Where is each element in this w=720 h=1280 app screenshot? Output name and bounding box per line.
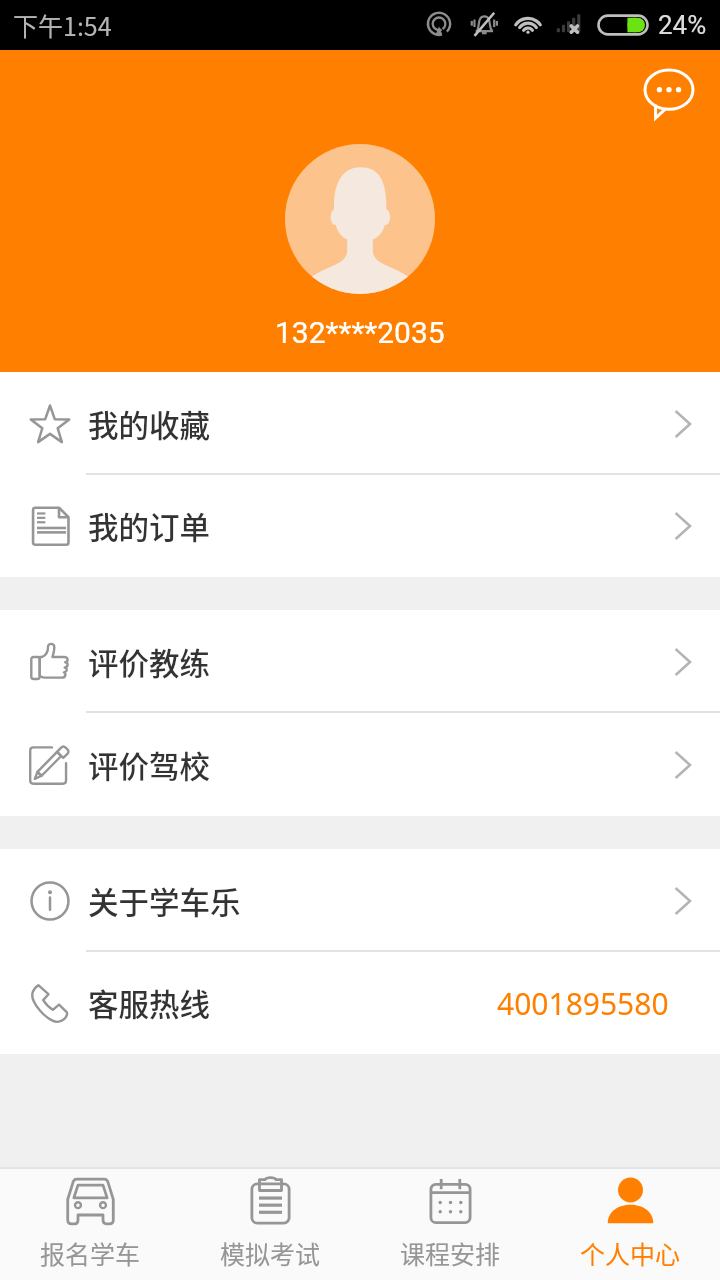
staticText: 4001895580 — [497, 983, 669, 1024]
button[interactable]: 评价驾校 — [0, 713, 720, 816]
button[interactable]: Messages — [637, 62, 701, 126]
staticText: 关于学车乐 — [88, 879, 241, 923]
button[interactable]: 报名学车 — [0, 1167, 180, 1280]
button[interactable]: 我的收藏 — [0, 372, 720, 475]
button[interactable]: 关于学车乐 — [0, 849, 720, 952]
staticText: 我的订单 — [88, 504, 210, 548]
staticText: 下午1:54 — [13, 7, 112, 43]
button[interactable]: 客服热线 — [0, 952, 720, 1054]
staticText: 客服热线 — [88, 981, 210, 1025]
staticText: 模拟考试 — [220, 1235, 321, 1271]
staticText: 132****2035 — [275, 315, 445, 350]
button[interactable]: 课程安排 — [360, 1167, 540, 1280]
button[interactable]: 评价教练 — [0, 610, 720, 713]
staticText: 评价驾校 — [88, 743, 210, 787]
staticText: 课程安排 — [400, 1235, 501, 1271]
staticText: 24% — [658, 10, 707, 40]
button[interactable]: 模拟考试 — [180, 1167, 360, 1280]
staticText: 报名学车 — [40, 1235, 141, 1271]
staticText: 评价教练 — [88, 640, 210, 684]
staticText: 我的收藏 — [88, 402, 210, 446]
button[interactable]: 个人中心 — [540, 1167, 720, 1280]
button[interactable]: 我的订单 — [0, 475, 720, 577]
staticText: 个人中心 — [580, 1235, 681, 1271]
button[interactable]: Profile photo — [285, 144, 435, 294]
